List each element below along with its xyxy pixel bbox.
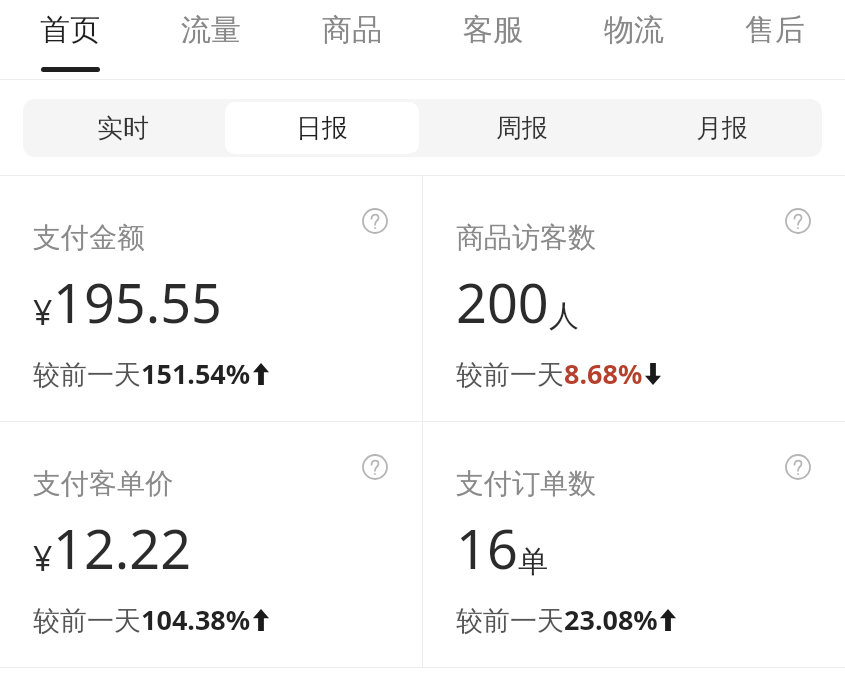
button[interactable]: Help bbox=[362, 208, 388, 234]
button[interactable]: Help bbox=[785, 454, 811, 480]
button[interactable]: 商品 bbox=[281, 0, 422, 80]
button[interactable]: 支付金额 bbox=[0, 176, 422, 421]
button[interactable]: 流量 bbox=[140, 0, 281, 80]
staticText: 客服 bbox=[463, 11, 523, 49]
staticText: 支付订单数 bbox=[456, 466, 596, 501]
button[interactable]: 月报 bbox=[625, 102, 819, 154]
button[interactable]: 实时 bbox=[26, 102, 219, 154]
staticText: 商品 bbox=[322, 11, 382, 49]
button[interactable]: 物流 bbox=[563, 0, 704, 80]
staticText: 较前一天23.08% bbox=[456, 601, 658, 638]
button[interactable]: 日报 bbox=[225, 102, 419, 154]
staticText: 实时 bbox=[97, 112, 149, 145]
staticText: 支付客单价 bbox=[33, 466, 173, 501]
button[interactable]: 首页 bbox=[0, 0, 140, 80]
staticText: 200 bbox=[456, 265, 549, 339]
staticText: 月报 bbox=[696, 112, 748, 145]
button[interactable]: 售后 bbox=[704, 0, 845, 80]
staticText: 流量 bbox=[181, 11, 241, 49]
staticText: 物流 bbox=[604, 11, 664, 49]
button[interactable]: 支付订单数 bbox=[423, 422, 845, 667]
staticText: 16 bbox=[456, 511, 518, 585]
staticText: 售后 bbox=[745, 11, 805, 49]
staticText: 商品访客数 bbox=[456, 220, 596, 255]
staticText: 人 bbox=[549, 297, 579, 335]
button[interactable]: Help bbox=[785, 208, 811, 234]
button[interactable]: Help bbox=[362, 454, 388, 480]
staticText: 较前一天151.54% bbox=[33, 355, 251, 392]
staticText: 日报 bbox=[296, 112, 348, 145]
staticText: 周报 bbox=[496, 112, 548, 145]
staticText: ¥ bbox=[33, 289, 53, 335]
button[interactable]: 客服 bbox=[422, 0, 563, 80]
staticText: 较前一天104.38% bbox=[33, 601, 251, 638]
staticText: 单 bbox=[518, 543, 548, 581]
staticText: 195.55 bbox=[53, 265, 222, 339]
button[interactable]: 商品访客数 bbox=[423, 176, 845, 421]
staticText: 12.22 bbox=[53, 511, 192, 585]
staticText: 支付金额 bbox=[33, 220, 145, 255]
staticText: 首页 bbox=[40, 11, 100, 49]
button[interactable]: 周报 bbox=[425, 102, 619, 154]
button[interactable]: 支付客单价 bbox=[0, 422, 422, 667]
staticText: ¥ bbox=[33, 535, 53, 581]
staticText: 较前一天8.68% bbox=[456, 355, 643, 392]
